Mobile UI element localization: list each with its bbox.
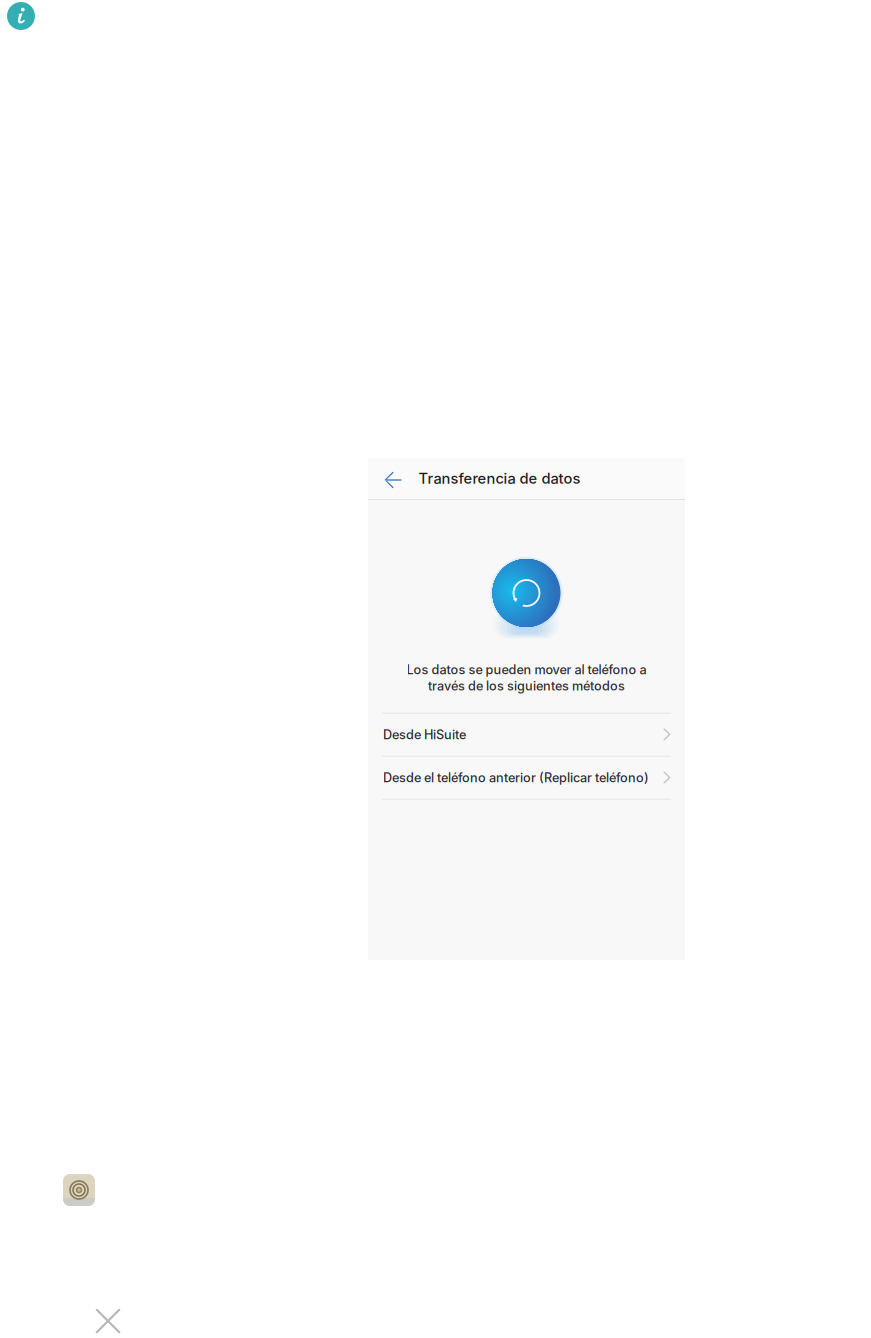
staticText: Los datos se pueden mover al teléfono a <box>406 662 646 677</box>
staticText: Desde el teléfono anterior (Replicar tel… <box>383 770 649 785</box>
button[interactable]: Desde el teléfono anterior (Replicar tel… <box>368 757 685 799</box>
button[interactable]: Close <box>95 1308 120 1333</box>
button[interactable]: Information <box>6 1 36 31</box>
staticText: través de los siguientes métodos <box>428 678 625 694</box>
staticText: Transferencia de datos <box>418 470 580 487</box>
button[interactable]: App icon <box>63 1174 95 1206</box>
staticText: Desde HiSuite <box>383 727 466 742</box>
button[interactable]: Back — Transferencia de datos <box>368 458 685 499</box>
button[interactable]: Desde HiSuite <box>368 714 685 756</box>
